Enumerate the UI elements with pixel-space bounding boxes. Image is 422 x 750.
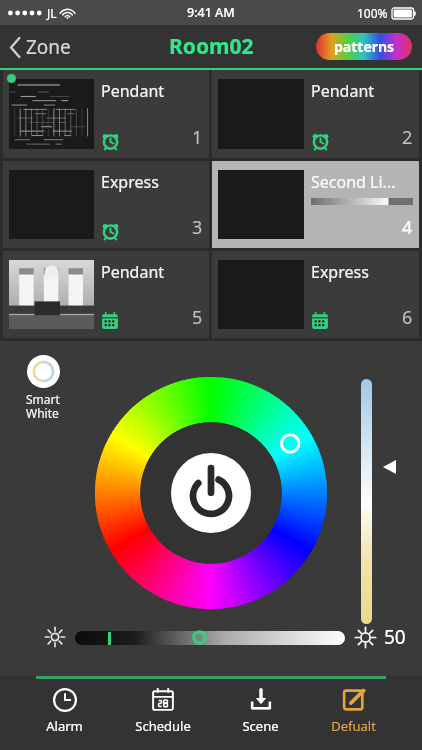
button[interactable]: Scene (228, 685, 293, 737)
staticText: Express (101, 171, 159, 193)
button[interactable]: Zone (0, 30, 81, 64)
staticText: Smart White (26, 391, 60, 422)
staticText: 4 (402, 215, 413, 240)
staticText: 6 (402, 305, 413, 330)
staticText: 1 (192, 125, 203, 150)
staticText: Pendant (311, 80, 375, 102)
button[interactable]: Brightness (75, 631, 345, 645)
staticText: Express (311, 261, 369, 283)
button[interactable]: Schedule (121, 685, 205, 737)
staticText: 9:41 AM (187, 4, 235, 21)
staticText: 2 (402, 125, 413, 150)
button[interactable]: patterns (316, 33, 412, 60)
button[interactable]: Express (3, 161, 209, 248)
staticText: Schedule (135, 717, 191, 735)
staticText: Alarm (46, 717, 83, 735)
button[interactable]: Pendant (3, 70, 209, 158)
staticText: Scene (242, 717, 279, 735)
staticText: 100% (357, 5, 388, 21)
staticText: Room02 (169, 32, 254, 61)
staticText: Second Li... (311, 171, 396, 193)
staticText: patterns (334, 37, 395, 56)
staticText: Pendant (101, 261, 165, 283)
staticText: 3 (192, 215, 203, 240)
button[interactable]: Express (212, 251, 419, 338)
button[interactable]: Second Li... (212, 161, 419, 248)
staticText: JL (47, 5, 57, 21)
staticText: 50 (384, 624, 406, 650)
button[interactable]: Alarm (32, 685, 97, 737)
staticText: Zone (26, 34, 71, 60)
button[interactable]: Smart White (26, 355, 60, 422)
button[interactable]: Pendant (212, 70, 419, 158)
button[interactable]: Colour temperature (361, 379, 372, 624)
staticText: Pendant (101, 80, 165, 102)
staticText: 5 (192, 305, 203, 330)
button[interactable]: Pendant (3, 251, 209, 338)
button[interactable]: Colour wheel (95, 377, 327, 609)
staticText: Defualt (331, 717, 376, 735)
button[interactable]: Defualt (317, 685, 390, 737)
